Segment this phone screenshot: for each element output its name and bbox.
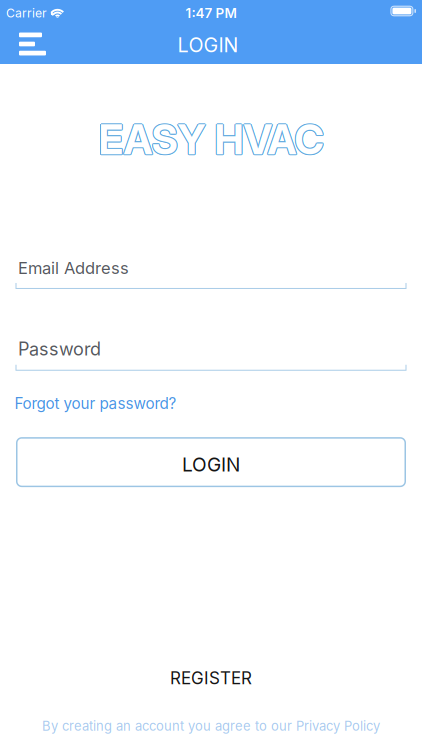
staticText: EASY HVAC — [98, 116, 323, 165]
staticText: LOGIN — [177, 33, 238, 57]
staticText: EASY HVAC — [99, 116, 324, 165]
staticText: EASY HVAC — [99, 115, 324, 164]
button[interactable]: By creating an account you agree to our … — [42, 718, 380, 734]
staticText: EASY HVAC — [99, 114, 324, 163]
staticText: Email Address — [18, 258, 129, 278]
staticText: 1:47 PM — [185, 5, 236, 21]
staticText: Carrier — [6, 6, 47, 20]
staticText: EASY HVAC — [98, 116, 323, 165]
staticText: Password — [18, 338, 101, 360]
button[interactable]: Forgot your password? — [14, 394, 176, 413]
staticText: Forgot your password? — [14, 394, 176, 413]
staticText: EASY HVAC — [97, 115, 322, 164]
staticText: By creating an account you agree to our … — [42, 718, 380, 734]
staticText: REGISTER — [170, 668, 252, 688]
staticText: EASY HVAC — [98, 115, 323, 164]
button[interactable]: Password — [15, 338, 406, 371]
button[interactable]: LOGIN — [16, 437, 406, 487]
button[interactable]: REGISTER — [170, 668, 252, 688]
staticText: LOGIN — [182, 453, 240, 476]
staticText: EASY HVAC — [98, 114, 323, 163]
button[interactable]: Email Address — [15, 258, 406, 289]
button[interactable]: Menu — [0, 33, 46, 56]
staticText: EASY HVAC — [98, 114, 323, 163]
